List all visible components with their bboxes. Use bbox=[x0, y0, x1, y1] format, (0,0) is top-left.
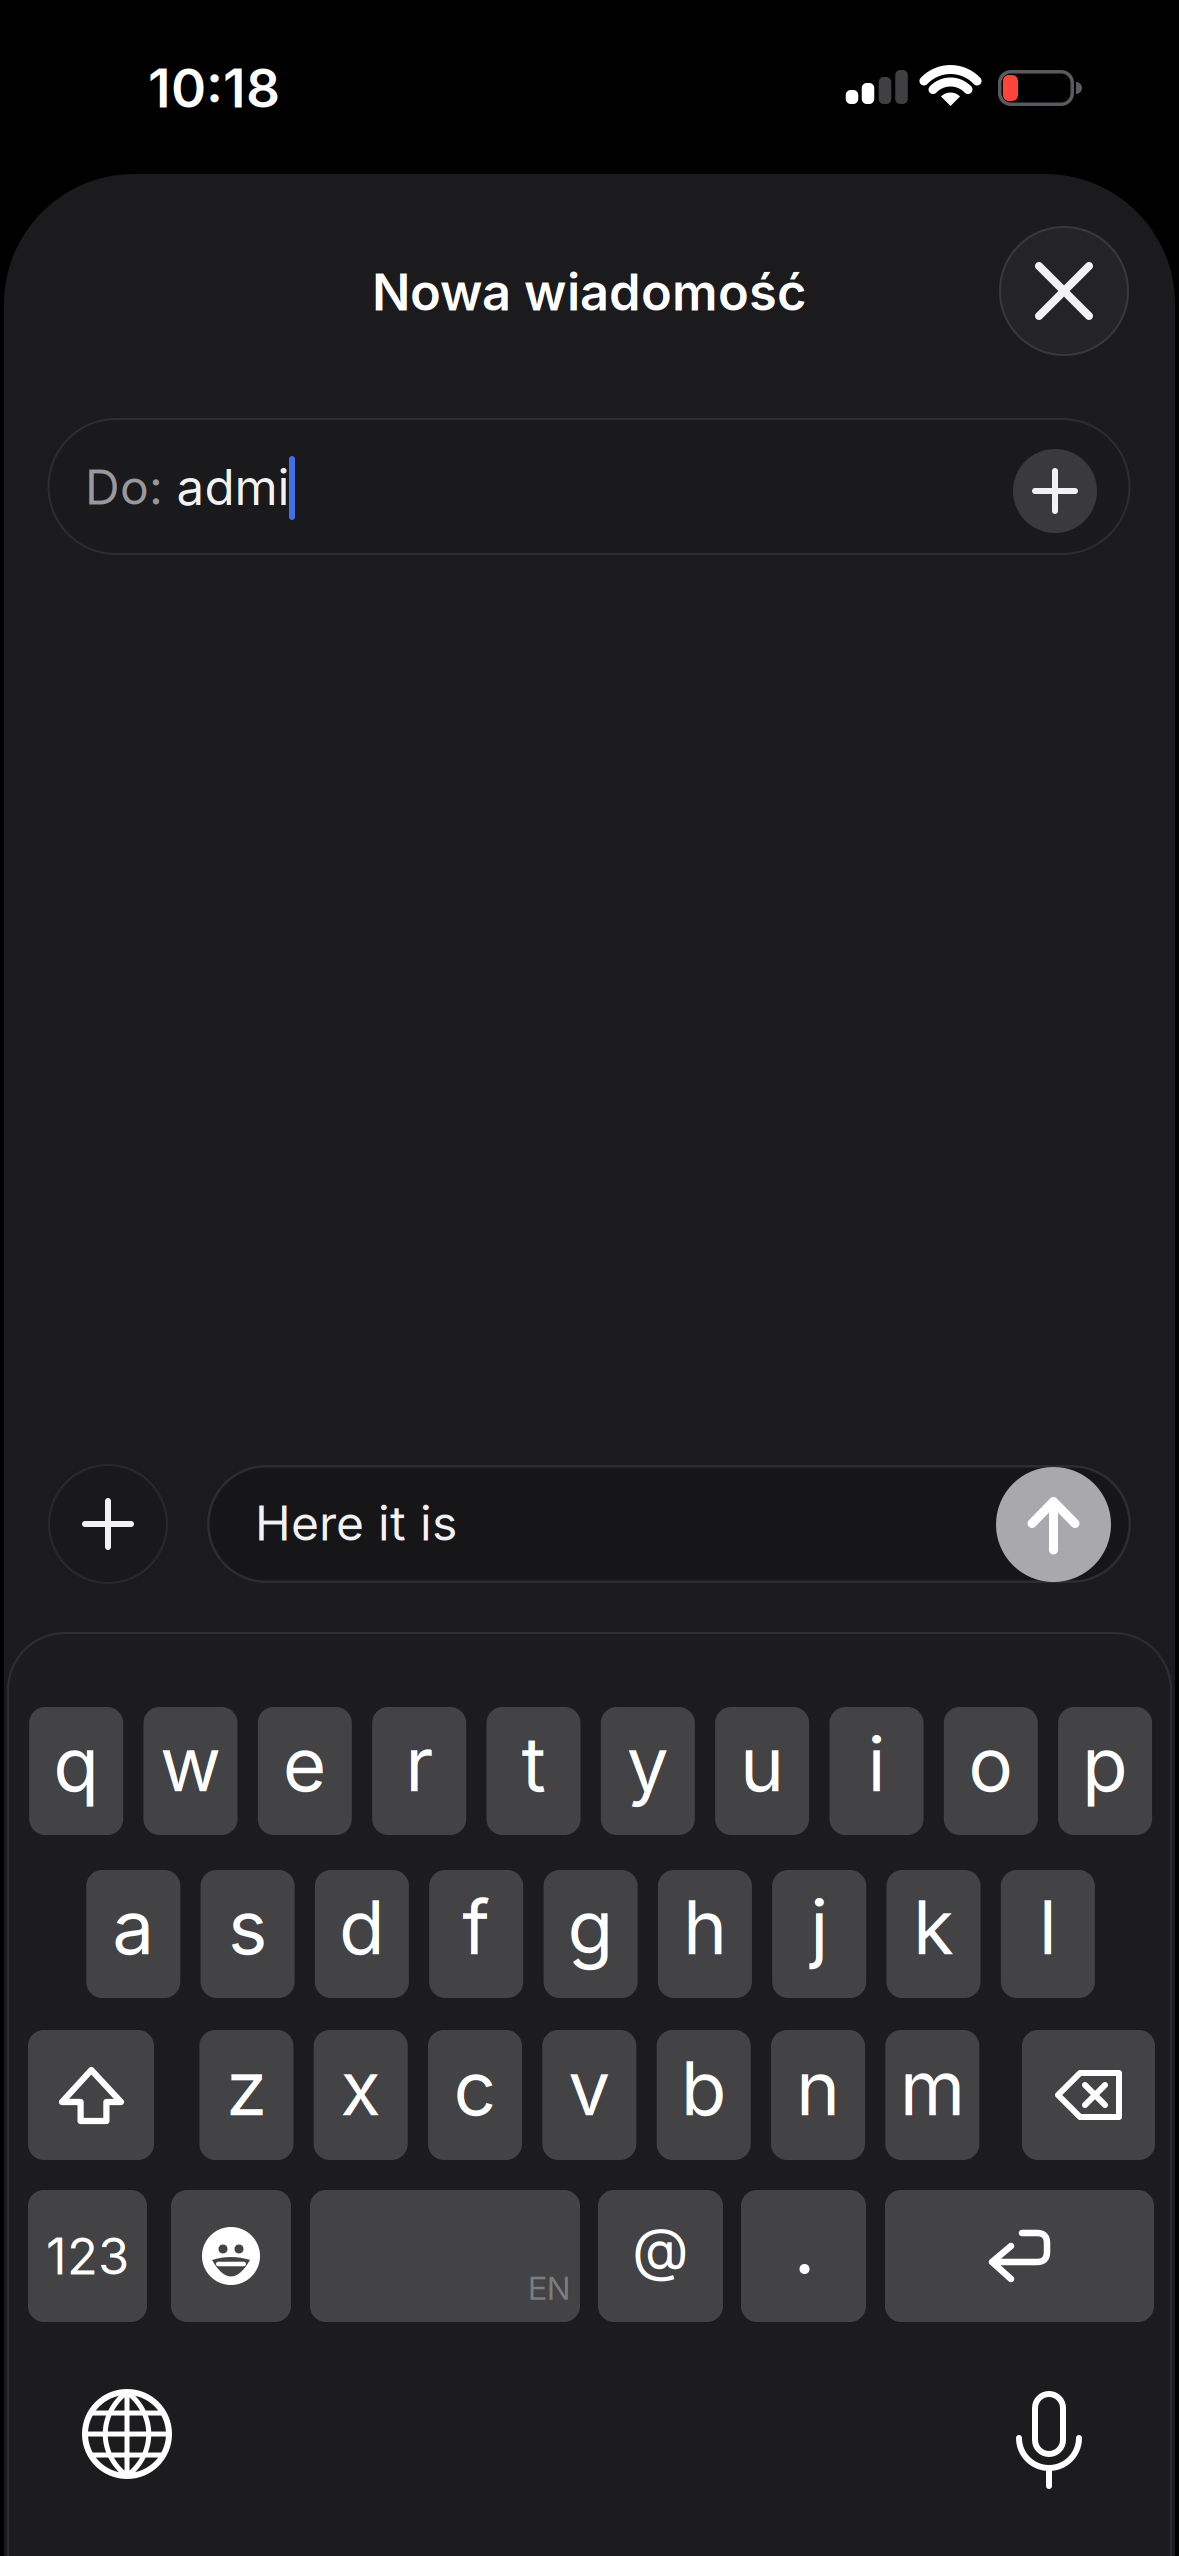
button[interactable]: w bbox=[143, 1707, 237, 1835]
staticText: t bbox=[521, 1719, 545, 1809]
button[interactable]: v bbox=[542, 2030, 636, 2160]
staticText: z bbox=[226, 2043, 267, 2133]
staticText: f bbox=[462, 1882, 490, 1972]
button[interactable]: Usuń bbox=[1022, 2030, 1155, 2160]
button[interactable]: h bbox=[658, 1870, 752, 1998]
button[interactable]: m bbox=[885, 2030, 979, 2160]
button[interactable]: 123 bbox=[28, 2190, 147, 2322]
button[interactable]: x bbox=[314, 2030, 408, 2160]
staticText: a bbox=[112, 1882, 154, 1972]
staticText: Nowa wiadomość bbox=[372, 261, 807, 323]
button[interactable]: @ bbox=[598, 2190, 723, 2322]
button[interactable]: s bbox=[201, 1870, 295, 1998]
button[interactable]: j bbox=[772, 1870, 866, 1998]
staticText: p bbox=[1082, 1719, 1128, 1809]
staticText: x bbox=[340, 2043, 381, 2133]
button[interactable]: Spacja bbox=[310, 2190, 580, 2322]
staticText: Do: bbox=[85, 458, 163, 516]
button[interactable]: a bbox=[86, 1870, 180, 1998]
button[interactable]: l bbox=[1001, 1870, 1095, 1998]
button[interactable]: f bbox=[429, 1870, 523, 1998]
staticText: s bbox=[228, 1882, 267, 1972]
staticText: r bbox=[405, 1719, 433, 1809]
staticText: admi bbox=[176, 457, 289, 517]
button[interactable]: Emoji bbox=[171, 2190, 291, 2322]
button[interactable]: Zamknij bbox=[999, 226, 1129, 356]
button[interactable]: u bbox=[715, 1707, 809, 1835]
staticText: @ bbox=[632, 2213, 689, 2284]
staticText: k bbox=[913, 1882, 954, 1972]
button[interactable]: z bbox=[199, 2030, 293, 2160]
staticText: q bbox=[53, 1719, 99, 1809]
button[interactable]: Shift bbox=[28, 2030, 154, 2160]
button[interactable]: Kropka bbox=[741, 2190, 866, 2322]
staticText: Here it is bbox=[255, 1494, 457, 1552]
button[interactable]: c bbox=[428, 2030, 522, 2160]
button[interactable]: o bbox=[944, 1707, 1038, 1835]
staticText: d bbox=[339, 1882, 385, 1972]
button[interactable]: i bbox=[829, 1707, 923, 1835]
staticText: h bbox=[683, 1882, 727, 1972]
button[interactable]: g bbox=[544, 1870, 638, 1998]
staticText: l bbox=[1039, 1882, 1057, 1972]
button[interactable]: Wyślij bbox=[996, 1467, 1111, 1582]
button[interactable]: Return bbox=[885, 2190, 1154, 2322]
staticText: w bbox=[160, 1719, 221, 1809]
staticText: u bbox=[740, 1719, 784, 1809]
button[interactable]: p bbox=[1058, 1707, 1152, 1835]
button[interactable]: r bbox=[372, 1707, 466, 1835]
staticText: b bbox=[681, 2043, 727, 2133]
staticText: c bbox=[453, 2043, 496, 2133]
button[interactable]: Dyktowanie bbox=[994, 2381, 1104, 2491]
staticText: y bbox=[627, 1719, 669, 1809]
button[interactable]: e bbox=[258, 1707, 352, 1835]
button[interactable]: Dodaj załącznik bbox=[48, 1464, 168, 1584]
button[interactable]: t bbox=[486, 1707, 580, 1835]
staticText: j bbox=[810, 1882, 828, 1972]
button[interactable]: b bbox=[657, 2030, 751, 2160]
staticText: e bbox=[283, 1719, 327, 1809]
button[interactable]: n bbox=[771, 2030, 865, 2160]
staticText: v bbox=[568, 2043, 610, 2133]
staticText: 123 bbox=[46, 2225, 129, 2287]
staticText: i bbox=[867, 1719, 885, 1809]
staticText: g bbox=[568, 1882, 614, 1972]
button[interactable]: d bbox=[315, 1870, 409, 1998]
button[interactable]: y bbox=[601, 1707, 695, 1835]
staticText: EN bbox=[528, 2269, 570, 2307]
button[interactable]: q bbox=[29, 1707, 123, 1835]
staticText: m bbox=[900, 2043, 965, 2133]
staticText: o bbox=[968, 1719, 1013, 1809]
button[interactable]: Dodaj kontakt bbox=[1013, 449, 1097, 533]
staticText: 10:18 bbox=[148, 56, 280, 120]
button[interactable]: Następna klawiatura bbox=[72, 2379, 182, 2489]
button[interactable]: k bbox=[886, 1870, 980, 1998]
staticText: n bbox=[796, 2043, 840, 2133]
